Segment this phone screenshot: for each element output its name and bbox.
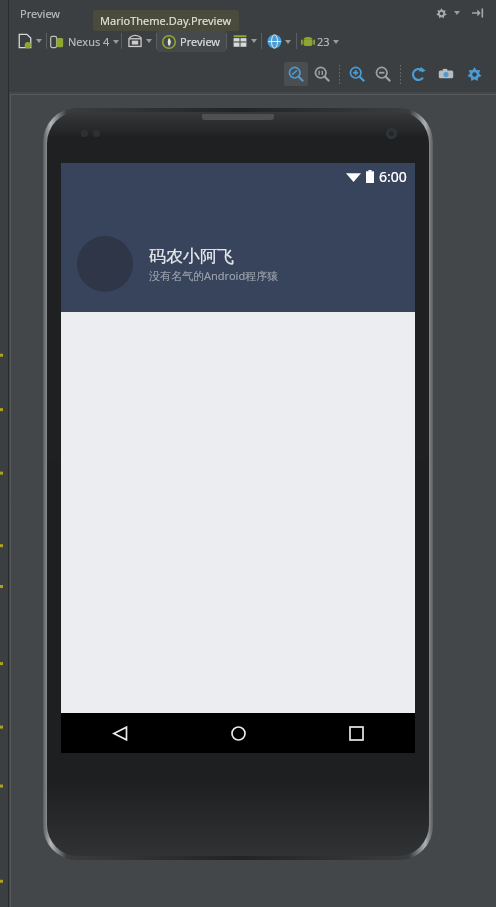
button[interactable]: Actual size (310, 62, 334, 86)
button[interactable]: Settings (431, 3, 451, 23)
button[interactable]: Settings (462, 62, 486, 86)
button[interactable] (122, 29, 156, 53)
button[interactable]: Zoom to fit (284, 62, 308, 86)
button[interactable] (227, 29, 261, 53)
button[interactable]: Preview (157, 30, 226, 52)
button[interactable]: Zoom in (345, 62, 369, 86)
staticText: Preview (20, 6, 61, 21)
staticText: Nexus 4 (68, 34, 110, 49)
staticText: MarioTheme.Day.Preview (100, 13, 232, 28)
button[interactable]: Screenshot (434, 62, 458, 86)
button[interactable]: 码农小阿飞 (61, 236, 415, 312)
button[interactable]: Home (179, 713, 297, 753)
button[interactable]: Collapse (468, 3, 488, 23)
staticText: 没有名气的Android程序猿 (149, 268, 279, 283)
staticText: 23 (317, 34, 330, 49)
button[interactable] (12, 29, 46, 53)
button[interactable]: Zoom out (371, 62, 395, 86)
button[interactable]: Recents (297, 713, 415, 753)
button[interactable]: Refresh (406, 62, 430, 86)
button[interactable]: Back (61, 713, 179, 753)
staticText: Preview (180, 34, 221, 49)
staticText: 码农小阿飞 (149, 246, 234, 267)
button[interactable]: 23 (297, 29, 343, 53)
button[interactable]: Nexus 4 (47, 29, 121, 53)
button[interactable] (262, 29, 296, 53)
staticText: 6:00 (379, 167, 407, 186)
